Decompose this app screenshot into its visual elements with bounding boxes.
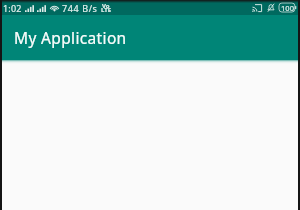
staticText: 1:02 [3,2,22,14]
staticText: 100 [281,3,294,12]
staticText: Vo [102,2,110,10]
button[interactable]: My Application [0,15,300,60]
other: Battery 100 percent [279,3,297,12]
other: Cast [252,4,262,12]
other: Notifications muted [267,3,275,12]
staticText: LTE [101,6,112,14]
staticText: My Application [14,27,127,48]
staticText: 744 B/s [62,2,98,14]
